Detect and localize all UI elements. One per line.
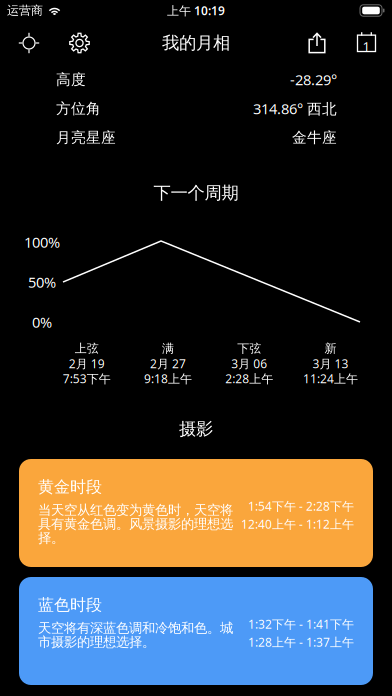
staticText: 12:40上午 - 1:12上午 <box>241 516 354 532</box>
staticText: 1:32下午 - 1:41下午 <box>248 616 354 632</box>
staticText: 2月 27 <box>150 355 186 372</box>
staticText: 50% <box>28 272 56 292</box>
staticText: 上午 10:19 <box>167 2 225 19</box>
button[interactable]: Locate <box>7 21 51 65</box>
button[interactable]: Share <box>284 21 350 65</box>
staticText: 金牛座 <box>292 128 337 147</box>
staticText: 2月 19 <box>69 355 105 372</box>
staticText: 天空将有深蓝色调和冷饱和色。城 <box>38 620 233 636</box>
staticText: 2:28上午 <box>225 370 273 387</box>
staticText: 具有黄金色调。风景摄影的理想选 <box>38 516 233 532</box>
staticText: 方位角 <box>56 99 101 118</box>
staticText: 1:54下午 - 2:28下午 <box>248 498 354 514</box>
staticText: 当天空从红色变为黄色时，天空将 <box>38 502 233 518</box>
button[interactable]: 蓝色时段 <box>19 577 373 685</box>
staticText: 我的月相 <box>162 32 230 54</box>
staticText: 蓝色时段 <box>38 595 102 615</box>
staticText: 100% <box>24 232 60 252</box>
staticText: 新 <box>324 341 336 356</box>
staticText: 3月 13 <box>312 355 348 372</box>
staticText: 择。 <box>38 530 64 546</box>
staticText: 月亮星座 <box>56 128 116 147</box>
staticText: -28.29° <box>290 69 337 89</box>
button[interactable]: Calendar <box>350 21 383 65</box>
staticText: 11:24上午 <box>303 370 358 387</box>
staticText: 0% <box>32 312 52 332</box>
staticText: 摄影 <box>179 418 213 440</box>
staticText: 黄金时段 <box>38 477 102 497</box>
staticText: 下一个周期 <box>153 182 238 204</box>
staticText: 9:18上午 <box>144 370 192 387</box>
staticText: 市摄影的理想选择。 <box>38 634 155 650</box>
staticText: 满 <box>162 341 174 356</box>
button[interactable]: Settings <box>51 21 108 65</box>
staticText: 高度 <box>56 70 86 89</box>
staticText: 7:53下午 <box>63 370 111 387</box>
staticText: 上弦 <box>75 341 99 356</box>
button[interactable]: 黄金时段 <box>19 459 373 567</box>
staticText: 运营商 <box>7 3 43 18</box>
staticText: 下弦 <box>237 341 261 356</box>
staticText: 3月 06 <box>231 355 267 372</box>
staticText: 1:28上午 - 1:37上午 <box>248 634 354 650</box>
staticText: 314.86° 西北 <box>253 98 337 118</box>
staticText: 1 <box>362 37 370 55</box>
